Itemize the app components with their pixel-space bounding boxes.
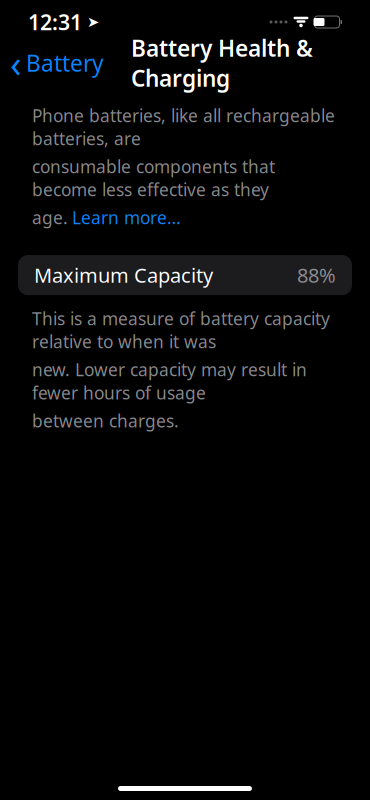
staticText: charging routine so it can wait to finis… [32,762,301,800]
staticText: Learn more… [72,206,181,229]
button[interactable]: Learn more… [72,206,181,229]
staticText: Battery Health & Charging [131,33,313,93]
staticText: consumable components that become less e… [32,155,275,201]
staticText: age. [32,206,68,229]
staticText: ‹ [10,38,22,88]
button[interactable]: Maximum Capacity [18,255,352,295]
staticText: new. Lower capacity may result in fewer … [32,358,307,404]
staticText: ➤ [87,14,99,30]
staticText: between charges. [32,409,179,432]
button[interactable]: ‹ [0,38,104,88]
staticText: Battery [26,48,104,78]
staticText: This is a measure of battery capacity re… [32,307,330,353]
staticText: 12:31 [28,8,82,36]
staticText: Phone batteries, like all rechargeable b… [32,104,335,150]
staticText: 88% [297,262,336,288]
staticText: Maximum Capacity [34,262,213,288]
